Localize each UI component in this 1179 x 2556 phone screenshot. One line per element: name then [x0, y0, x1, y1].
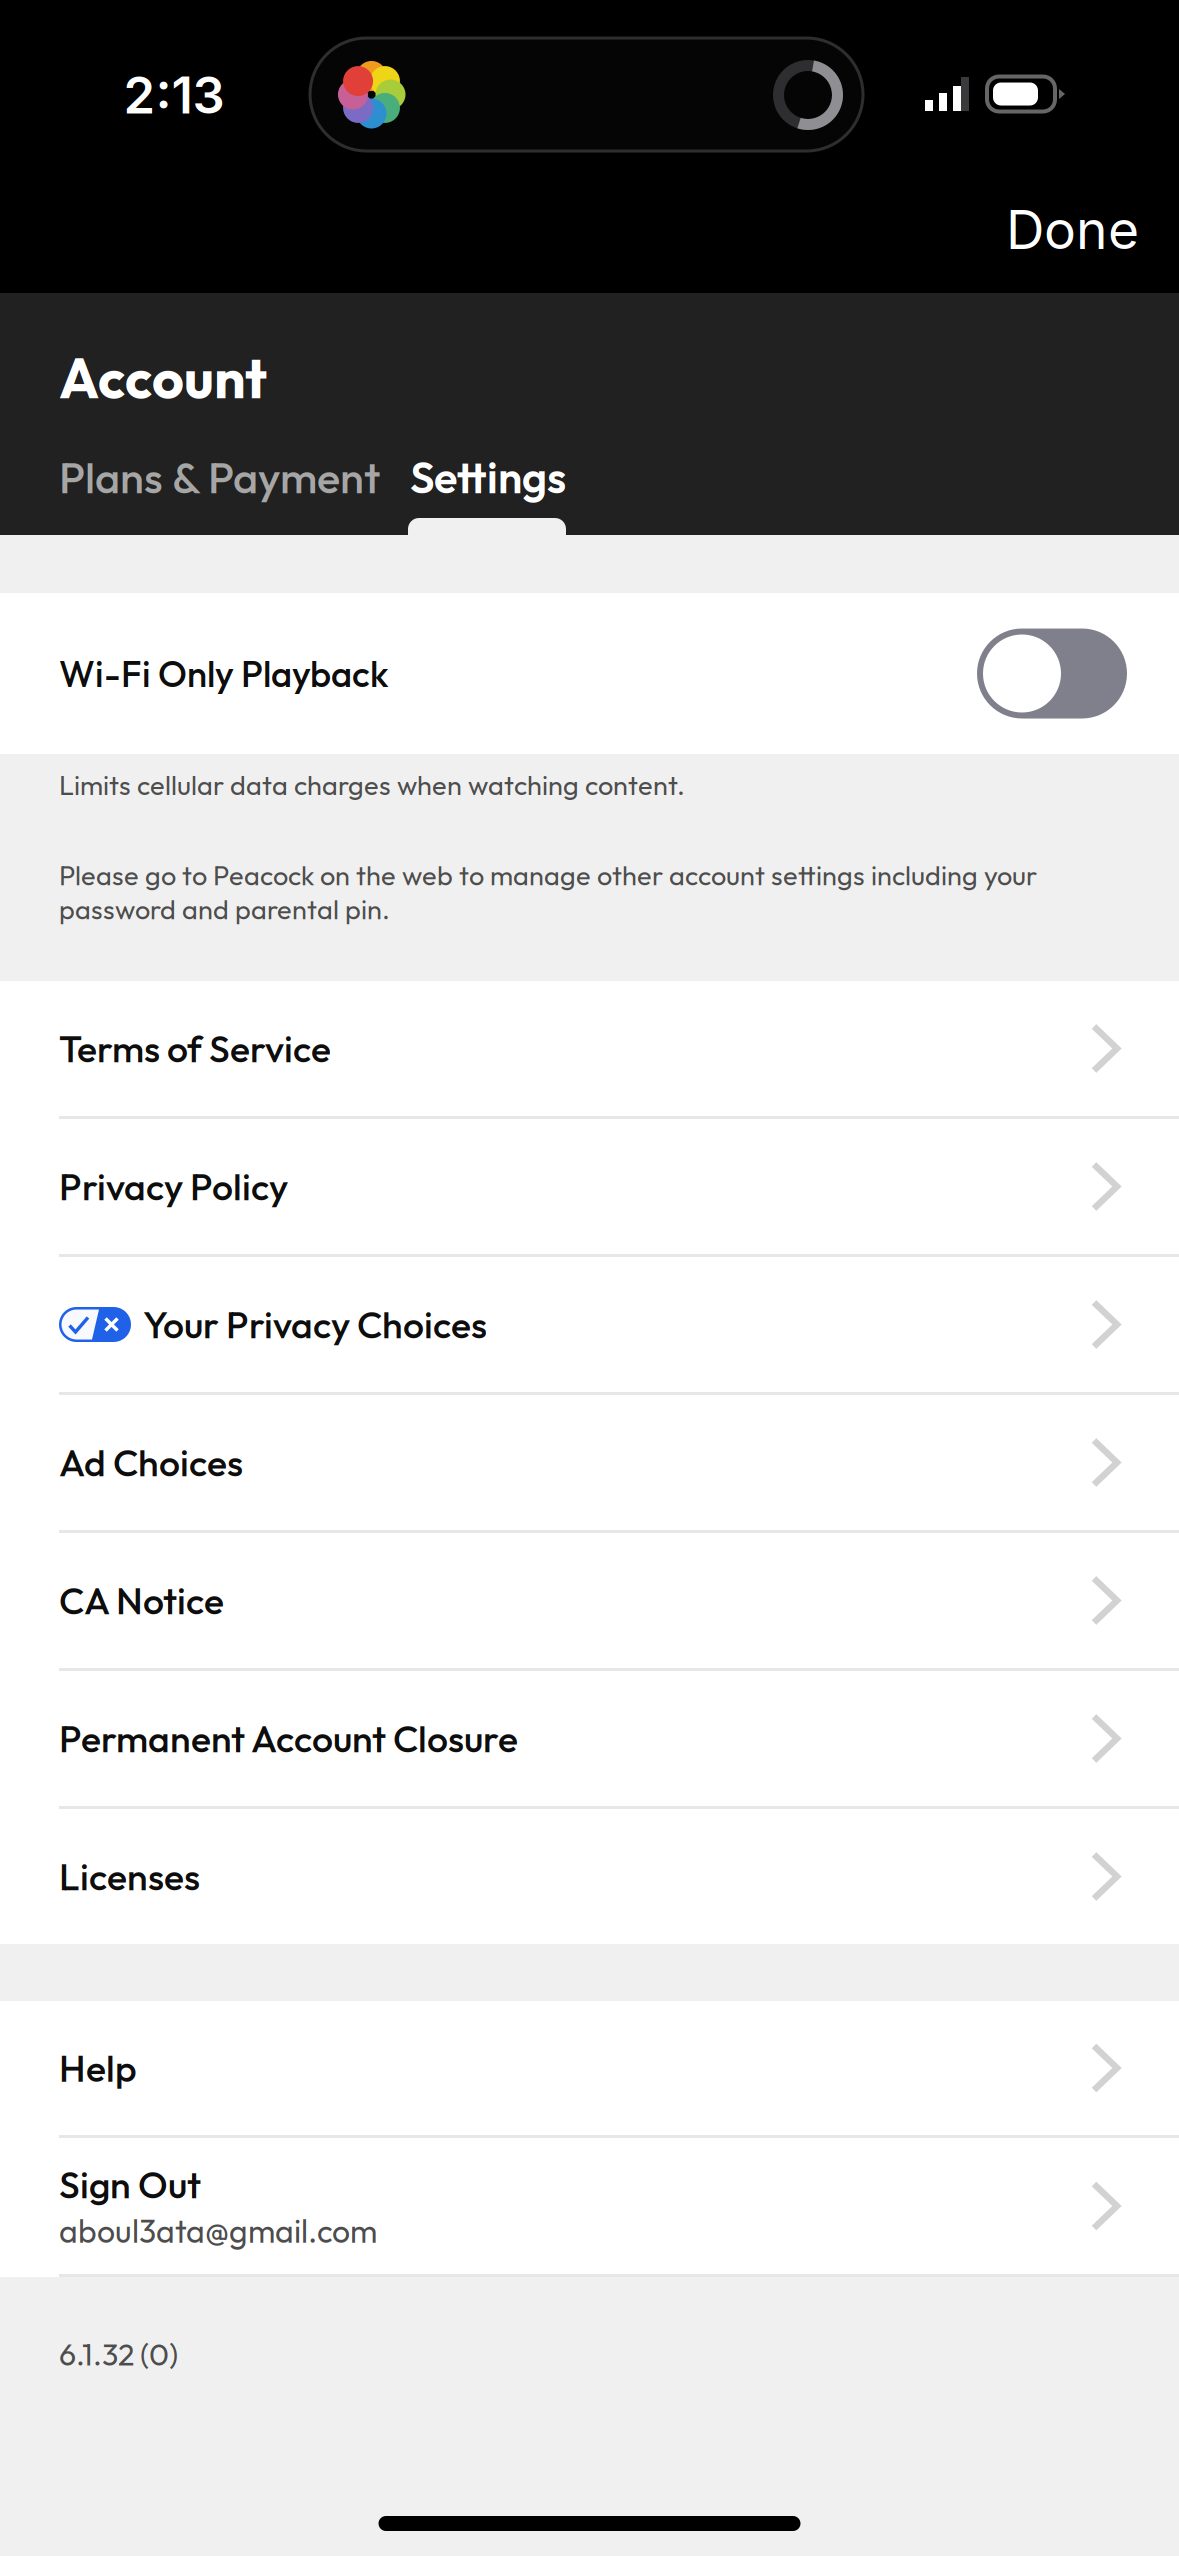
staticText: Settings: [410, 450, 566, 505]
staticText: 2:13: [123, 64, 224, 126]
staticText: CA Notice: [59, 1577, 224, 1624]
staticText: Privacy Policy: [59, 1163, 288, 1210]
staticText: Licenses: [59, 1853, 200, 1900]
button[interactable]: Ad Choices: [0, 1395, 1179, 1530]
button[interactable]: Your Privacy Choices: [0, 1257, 1179, 1392]
staticText: Terms of Service: [59, 1025, 331, 1072]
button[interactable]: Licenses: [0, 1809, 1179, 1944]
staticText: Ad Choices: [59, 1439, 243, 1486]
staticText: Your Privacy Choices: [143, 1301, 487, 1348]
button[interactable]: Settings: [410, 450, 566, 505]
staticText: Account: [59, 343, 267, 413]
button[interactable]: Privacy Policy: [0, 1119, 1179, 1254]
staticText: aboul3ata@gmail.com: [59, 2211, 377, 2251]
staticText: 6.1.32 (0): [59, 2335, 178, 2373]
button[interactable]: Plans & Payment: [59, 450, 380, 505]
button[interactable]: Help: [0, 2001, 1179, 2135]
staticText: Sign Out: [59, 2161, 201, 2208]
staticText: Plans & Payment: [59, 450, 380, 505]
button[interactable]: Permanent Account Closure: [0, 1671, 1179, 1806]
button[interactable]: Done: [980, 189, 1165, 294]
staticText: Wi-Fi Only Playback: [59, 651, 389, 696]
staticText: Help: [59, 2044, 137, 2091]
button[interactable]: Terms of Service: [0, 981, 1179, 1116]
staticText: Permanent Account Closure: [59, 1715, 518, 1762]
staticText: Done: [1006, 197, 1139, 262]
button[interactable]: Sign Out: [0, 2138, 1179, 2274]
staticText: Limits cellular data charges when watchi…: [59, 768, 685, 802]
button[interactable]: CA Notice: [0, 1533, 1179, 1668]
staticText: Please go to Peacock on the web to manag…: [59, 858, 1037, 926]
button[interactable]: Wi-Fi Only Playback: [977, 628, 1127, 718]
